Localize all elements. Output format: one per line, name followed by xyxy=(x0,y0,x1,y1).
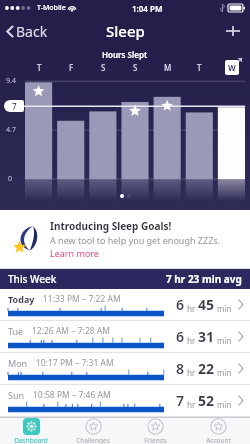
staticText: Dashboard xyxy=(14,436,48,444)
staticText: Hours Slept xyxy=(102,49,148,60)
staticText: hr xyxy=(185,303,198,314)
staticText: Tue xyxy=(8,325,24,337)
staticText: 7 xyxy=(176,391,185,410)
staticText: 31 xyxy=(198,327,215,346)
staticText: T xyxy=(197,62,202,73)
staticText: M xyxy=(164,62,172,73)
button[interactable]: Dashboard xyxy=(0,418,62,444)
staticText: Sleep xyxy=(106,21,145,41)
staticText: hr xyxy=(185,335,198,346)
staticText: Friends xyxy=(144,436,167,444)
button[interactable]: Add sleep log xyxy=(216,16,250,46)
staticText: hr xyxy=(185,367,198,378)
button[interactable]: Introducing Sleep Goals! xyxy=(0,210,250,268)
button[interactable]: Expand chart xyxy=(229,54,246,71)
staticText: 1:04 PM xyxy=(132,3,163,14)
staticText: Account xyxy=(206,436,231,444)
staticText: F xyxy=(69,62,74,73)
staticText: A new tool to help you get enough ZZZs. xyxy=(50,234,221,246)
staticText: Mon xyxy=(8,357,28,369)
staticText: 6 xyxy=(176,327,185,346)
staticText: min xyxy=(215,399,232,410)
staticText: This Week xyxy=(8,272,57,286)
staticText: Challenges xyxy=(76,436,110,444)
button[interactable]: Challenges xyxy=(62,418,124,444)
button[interactable]: Mon xyxy=(0,353,250,385)
staticText: 12:26 AM – 7:28 AM xyxy=(32,325,110,337)
button[interactable]: Today xyxy=(0,289,250,321)
staticText: W xyxy=(228,62,236,73)
staticText: 22 xyxy=(198,359,215,378)
staticText: 7 hr 23 min avg xyxy=(166,272,242,286)
button[interactable]: Learn more xyxy=(50,247,99,259)
staticText: 4.7 xyxy=(6,125,16,135)
staticText: 7 xyxy=(12,101,17,112)
staticText: 52 xyxy=(198,391,215,410)
staticText: 0 xyxy=(8,174,13,184)
staticText: min xyxy=(215,303,232,314)
button[interactable]: Back xyxy=(0,18,56,45)
staticText: S xyxy=(133,62,138,73)
button[interactable]: Account xyxy=(187,418,250,444)
staticText: 6 xyxy=(176,295,185,314)
staticText: 11:33 PM – 7:22 AM xyxy=(43,293,121,305)
staticText: 10:58 PM – 7:46 AM xyxy=(33,389,111,401)
button[interactable]: Tue xyxy=(0,321,250,353)
staticText: 10:17 PM – 7:31 AM xyxy=(36,357,114,369)
staticText: 8 xyxy=(176,359,185,378)
staticText: 9.4 xyxy=(6,76,16,86)
staticText: T xyxy=(37,62,42,73)
staticText: min xyxy=(215,335,232,346)
staticText: S xyxy=(101,62,106,73)
staticText: 45 xyxy=(198,295,215,314)
button[interactable]: Sun xyxy=(0,385,250,417)
staticText: Back xyxy=(16,22,48,41)
staticText: min xyxy=(215,367,232,378)
staticText: hr xyxy=(185,399,198,410)
staticText: Sun xyxy=(8,389,25,401)
staticText: Introducing Sleep Goals! xyxy=(50,219,172,233)
button[interactable]: Friends xyxy=(124,418,187,444)
staticText: Today xyxy=(8,293,35,305)
staticText: T-Mobile xyxy=(37,3,66,13)
